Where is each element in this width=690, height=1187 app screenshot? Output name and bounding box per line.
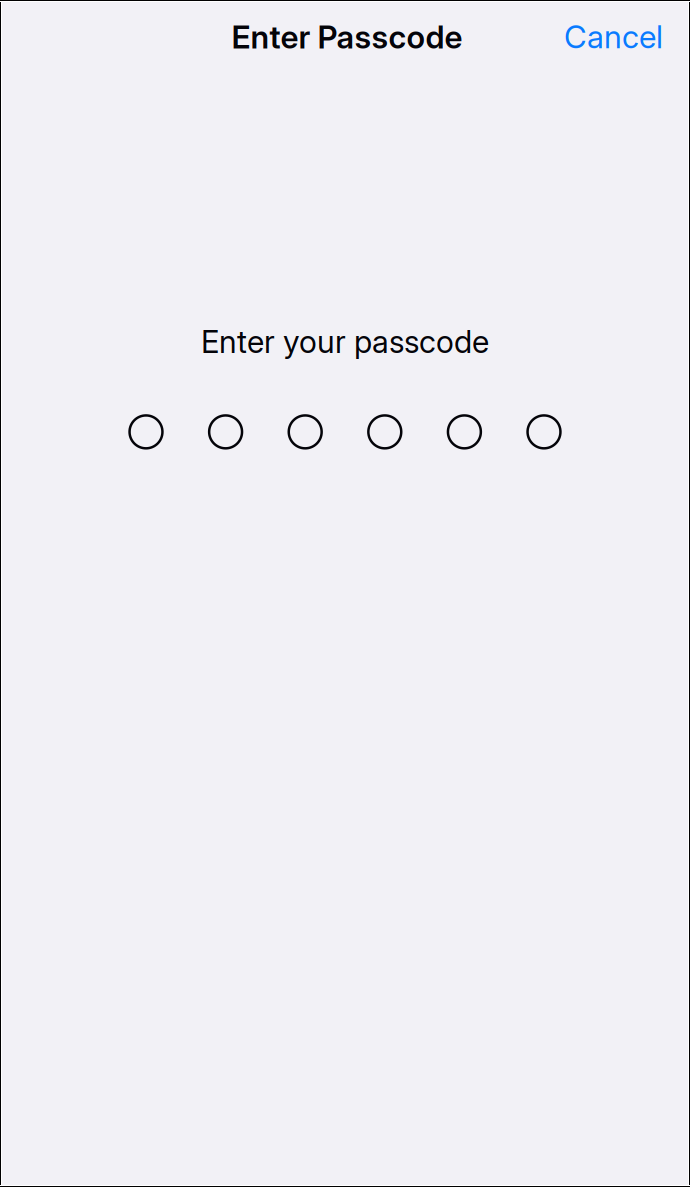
staticText: Enter Passcode [231,18,462,56]
staticText: Enter your passcode [201,323,489,360]
staticText: Cancel [564,18,663,56]
button[interactable]: Cancel [554,10,673,64]
